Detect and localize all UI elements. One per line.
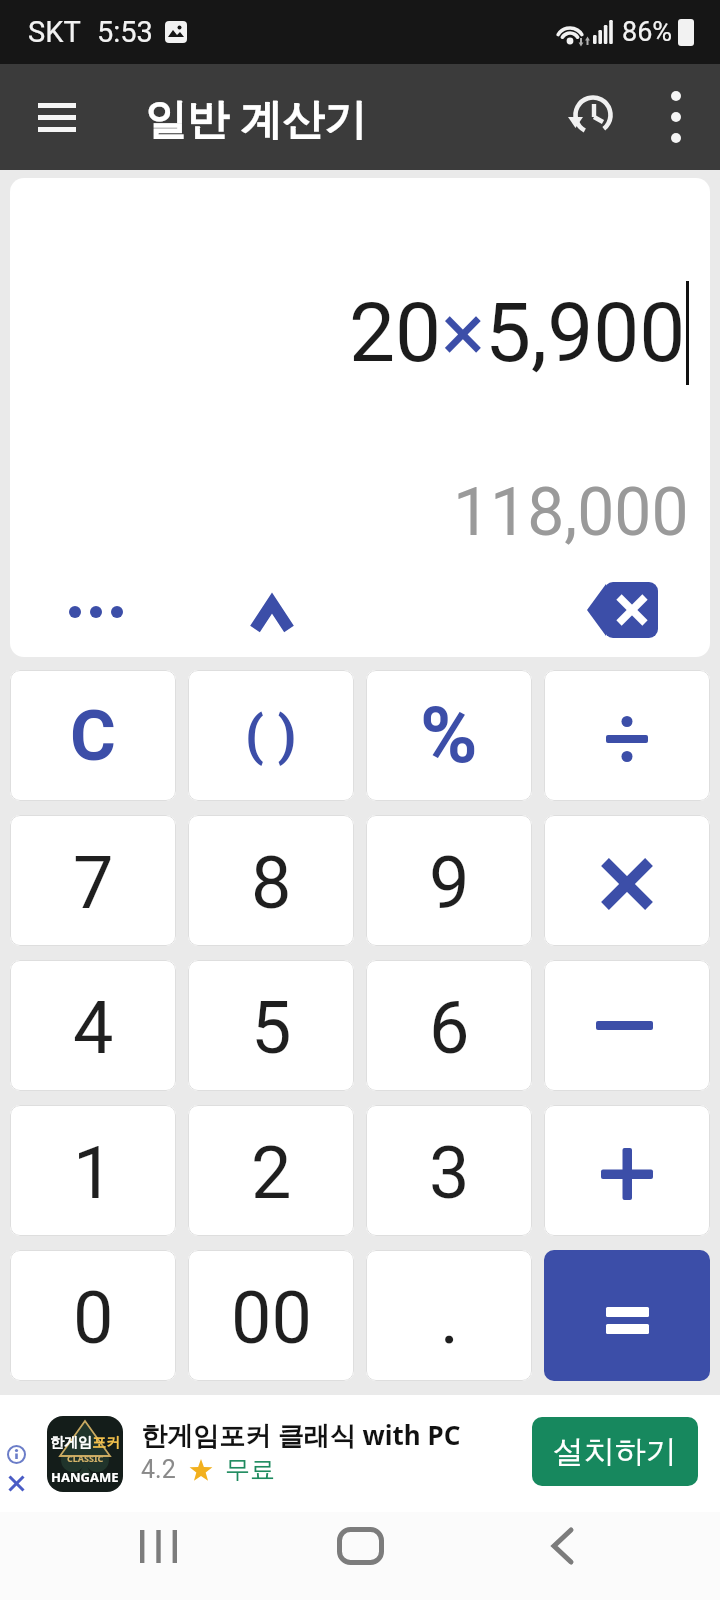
staticText: 4 (73, 986, 114, 1070)
button[interactable] (522, 1512, 602, 1580)
button[interactable] (544, 1250, 710, 1381)
button[interactable]: . (366, 1250, 532, 1381)
button[interactable]: 5 (188, 960, 354, 1091)
staticText: 7 (73, 841, 114, 925)
staticText: C (70, 695, 116, 777)
button[interactable]: 7 (10, 815, 176, 946)
staticText: 1 (73, 1131, 114, 1215)
button[interactable] (8, 1475, 25, 1492)
staticText: CLASSIC (67, 1452, 104, 1464)
button[interactable] (658, 84, 694, 150)
staticText: 2 (251, 1131, 292, 1215)
button[interactable]: 8 (188, 815, 354, 946)
staticText: SKT (28, 15, 81, 49)
button[interactable] (544, 815, 710, 946)
button[interactable]: 00 (188, 1250, 354, 1381)
button[interactable] (320, 1512, 400, 1580)
staticText: 일반 계산기 (145, 89, 366, 146)
button[interactable]: 설치하기 (532, 1417, 698, 1486)
staticText: 00 (231, 1276, 312, 1360)
button[interactable] (563, 89, 619, 145)
button[interactable]: 4 (10, 960, 176, 1091)
staticText: 0 (73, 1276, 114, 1360)
staticText: % (420, 690, 478, 781)
button[interactable] (580, 575, 664, 645)
button[interactable] (544, 1105, 710, 1236)
staticText: 3 (429, 1131, 470, 1215)
staticText: 한게임포커 클래식 with PC (141, 1417, 461, 1453)
staticText: 5:53 (97, 15, 153, 49)
staticText: 포커 (92, 1434, 120, 1452)
button[interactable] (7, 1445, 26, 1464)
staticText: 118,000 (453, 474, 689, 551)
staticText: . (440, 1276, 459, 1360)
button[interactable]: 6 (366, 960, 532, 1091)
staticText: 6 (429, 986, 470, 1070)
staticText: 설치하기 (553, 1432, 677, 1471)
button[interactable]: 2 (188, 1105, 354, 1236)
button[interactable]: % (366, 670, 532, 801)
staticText: 20×5,900 (349, 285, 686, 381)
button[interactable] (544, 670, 710, 801)
button[interactable] (544, 960, 710, 1091)
staticText: HANGAME (51, 1468, 119, 1486)
button[interactable] (24, 84, 90, 150)
staticText: ( ) (245, 704, 297, 767)
button[interactable]: 0 (10, 1250, 176, 1381)
button[interactable] (232, 575, 312, 655)
staticText: 4.2 (141, 1455, 176, 1484)
button[interactable]: C (10, 670, 176, 801)
button[interactable]: 9 (366, 815, 532, 946)
button[interactable]: 3 (366, 1105, 532, 1236)
staticText: 무료 (225, 1454, 275, 1485)
button[interactable]: 한게임 (47, 1416, 123, 1492)
button[interactable] (118, 1512, 198, 1580)
button[interactable] (50, 584, 142, 640)
staticText: 86% (622, 16, 673, 48)
staticText: 9 (429, 841, 470, 925)
button[interactable]: 1 (10, 1105, 176, 1236)
button[interactable]: ( ) (188, 670, 354, 801)
staticText: 한게임 (50, 1434, 92, 1452)
staticText: 5 (251, 986, 292, 1070)
staticText: 8 (251, 841, 292, 925)
